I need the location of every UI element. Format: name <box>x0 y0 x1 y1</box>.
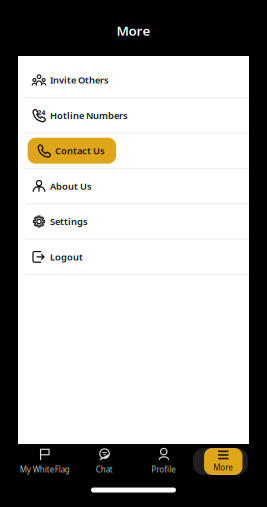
button[interactable]: More <box>193 448 253 475</box>
staticText: Contact Us <box>55 144 105 157</box>
staticText: About Us <box>50 180 92 192</box>
button[interactable]: Profile <box>134 448 193 475</box>
staticText: Invite Others <box>50 74 109 86</box>
staticText: 24 <box>37 108 45 117</box>
staticText: Hotline Numbers <box>50 109 128 121</box>
staticText: Profile <box>151 464 176 475</box>
button[interactable]: 24 <box>18 98 249 132</box>
button[interactable]: About Us <box>18 169 249 203</box>
button[interactable]: Contact Us <box>18 133 249 168</box>
staticText: Logout <box>50 251 83 263</box>
staticText: More <box>213 462 233 473</box>
button[interactable]: Logout <box>18 240 249 274</box>
button[interactable]: My WhiteFlag <box>15 448 74 475</box>
button[interactable]: Invite Others <box>18 63 249 97</box>
button[interactable]: Settings <box>18 204 249 239</box>
staticText: My WhiteFlag <box>20 464 70 475</box>
staticText: Settings <box>50 215 88 228</box>
staticText: More <box>116 22 150 39</box>
staticText: Chat <box>96 464 113 475</box>
button[interactable]: Chat <box>74 448 134 475</box>
